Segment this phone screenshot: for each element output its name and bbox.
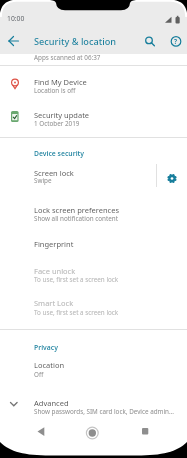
button[interactable]: Location — [0, 352, 187, 380]
staticText: Face unlock — [34, 266, 76, 276]
button[interactable] — [4, 31, 24, 51]
button[interactable]: Lock screen preferences — [0, 193, 187, 225]
staticText: Privacy — [34, 343, 58, 352]
staticText: 10:00 — [7, 14, 25, 23]
staticText: Screen lock — [34, 168, 74, 178]
staticText: Location is off — [34, 86, 76, 95]
button[interactable]: Advanced — [0, 390, 187, 418]
staticText: Off — [34, 370, 44, 379]
staticText: To use, first set a screen lock — [34, 308, 119, 317]
staticText: Smart Lock — [34, 298, 74, 308]
button[interactable]: Fingerprint — [0, 228, 187, 258]
staticText: Device security — [34, 149, 85, 158]
button[interactable] — [139, 31, 160, 51]
button[interactable]: Security update — [0, 99, 187, 133]
staticText: Lock screen preferences — [34, 205, 120, 215]
staticText: Security update — [34, 110, 90, 120]
staticText: Advanced — [34, 398, 69, 408]
staticText: ? — [174, 37, 178, 46]
button[interactable] — [124, 420, 166, 444]
staticText: Show all notification content — [34, 214, 118, 223]
button[interactable]: ? — [166, 31, 186, 51]
button[interactable]: Smart Lock — [0, 290, 187, 322]
staticText: Find My Device — [34, 77, 87, 87]
staticText: Security & location — [34, 35, 117, 48]
staticText: 1 October 2019 — [34, 119, 80, 128]
staticText: Swipe — [34, 176, 52, 185]
button[interactable] — [160, 166, 185, 191]
button[interactable] — [20, 420, 62, 444]
staticText: Fingerprint — [34, 239, 74, 249]
staticText: Show passwords, SIM card lock, Device ad… — [34, 407, 175, 416]
staticText: Apps scanned at 06:37 — [34, 53, 101, 62]
button[interactable]: Find My Device — [0, 69, 187, 99]
staticText: Location — [34, 360, 65, 370]
button[interactable]: Screen lock — [0, 157, 187, 193]
staticText: To use, first set a screen lock — [34, 275, 119, 284]
button[interactable]: Face unlock — [0, 258, 187, 288]
button[interactable] — [72, 420, 114, 444]
